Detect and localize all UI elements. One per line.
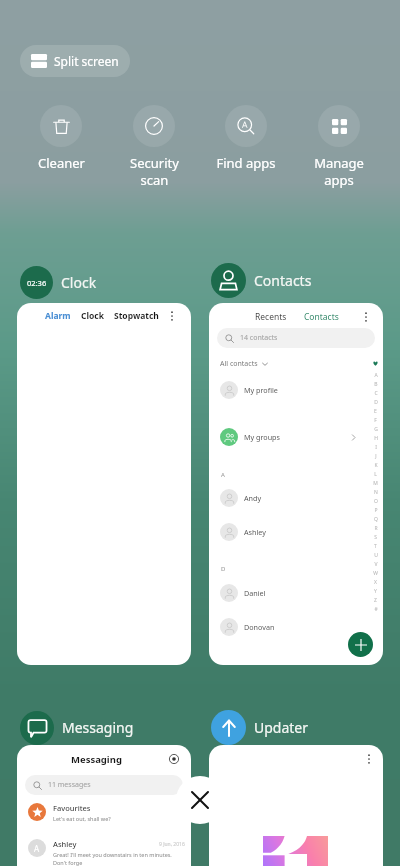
button[interactable]: Split screen — [20, 45, 130, 77]
staticText: L — [374, 471, 377, 478]
staticText: H — [374, 435, 378, 442]
staticText: A — [221, 471, 225, 479]
button[interactable]: Updater — [211, 710, 309, 745]
staticText: Messaging — [62, 718, 134, 737]
button[interactable]: Favourites — [17, 803, 191, 822]
staticText: All contacts — [220, 359, 258, 369]
staticText: Clock — [81, 310, 104, 322]
button[interactable]: Security scan — [108, 105, 200, 189]
staticText: My profile — [244, 385, 278, 395]
staticText: U — [374, 552, 378, 559]
staticText: # — [374, 606, 378, 613]
staticText: Donovan — [244, 622, 275, 632]
staticText: D — [221, 565, 226, 573]
button[interactable]: More options — [209, 745, 383, 866]
button[interactable]: My groups — [209, 426, 383, 448]
button[interactable]: More options — [164, 308, 180, 324]
staticText: 11 messages — [48, 780, 91, 790]
button[interactable]: Find apps — [200, 105, 292, 172]
staticText: Let's eat out, shall we? — [53, 815, 111, 822]
button[interactable]: Close all — [176, 776, 224, 824]
staticText: 14 contacts — [240, 333, 278, 343]
staticText: B — [374, 381, 378, 388]
button[interactable]: Messaging — [17, 745, 191, 866]
button[interactable]: Messaging — [20, 710, 134, 745]
button[interactable]: Andy — [209, 487, 383, 509]
button[interactable]: Contacts — [211, 263, 312, 298]
staticText: I — [375, 444, 377, 451]
staticText: F — [374, 417, 377, 424]
staticText: 02:36 — [27, 278, 47, 288]
staticText: T — [374, 543, 377, 550]
staticText: P — [374, 507, 378, 514]
staticText: E — [374, 408, 377, 415]
staticText: A — [374, 372, 378, 379]
button[interactable]: 14 contacts — [217, 328, 375, 348]
staticText: Cleaner — [38, 154, 85, 172]
staticText: Favourites — [53, 803, 91, 813]
staticText: Clock — [61, 273, 97, 292]
staticText: Alarm — [45, 310, 71, 322]
staticText: 9 Jun, 2016 — [159, 841, 185, 848]
staticText: K — [374, 462, 378, 469]
staticText: R — [374, 525, 378, 532]
button[interactable]: Alarm — [17, 303, 191, 665]
staticText: Q — [374, 516, 378, 523]
staticText: N — [374, 489, 378, 496]
staticText: O — [374, 498, 378, 505]
staticText: Contacts — [254, 271, 312, 290]
button[interactable]: Manage apps — [293, 105, 385, 189]
button[interactable]: New message — [167, 752, 181, 766]
staticText: Ashley — [244, 527, 266, 537]
staticText: J — [375, 453, 377, 460]
staticText: M — [373, 480, 378, 487]
staticText: Updater — [254, 718, 309, 737]
staticText: Manage apps — [314, 154, 364, 189]
button[interactable]: 02:36 — [20, 265, 97, 300]
button[interactable]: Daniel — [209, 582, 383, 604]
button[interactable]: Ashley — [209, 521, 383, 543]
staticText: My groups — [244, 432, 280, 442]
staticText: W — [373, 570, 378, 577]
staticText: S — [374, 534, 377, 541]
button[interactable]: More options — [361, 751, 377, 767]
button[interactable]: My profile — [209, 379, 383, 401]
staticText: Z — [374, 597, 377, 604]
button[interactable]: 11 messages — [25, 775, 183, 795]
staticText: Contacts — [304, 311, 339, 323]
button[interactable]: Recents — [209, 303, 383, 665]
staticText: C — [374, 390, 378, 397]
button[interactable]: A — [17, 839, 191, 866]
staticText: Daniel — [244, 588, 266, 598]
staticText: G — [374, 426, 378, 433]
button[interactable]: Donovan — [209, 616, 383, 638]
button[interactable]: Cleaner — [15, 105, 107, 172]
button[interactable]: More options — [358, 309, 374, 325]
staticText: Ashley — [53, 839, 77, 849]
staticText: D — [374, 399, 378, 406]
staticText: Security scan — [130, 154, 179, 189]
staticText: Recents — [255, 311, 287, 323]
staticText: V — [374, 561, 378, 568]
staticText: Y — [374, 588, 377, 595]
staticText: Split screen — [54, 53, 119, 69]
staticText: X — [374, 579, 377, 586]
button[interactable]: Add contact — [348, 632, 373, 657]
staticText: Find apps — [216, 154, 276, 172]
staticText: Messaging — [71, 753, 122, 766]
staticText: Great! I'll meet you downstairs in ten m… — [53, 851, 172, 866]
staticText: Andy — [244, 493, 262, 503]
staticText: Stopwatch — [114, 310, 159, 322]
staticText: A — [34, 843, 40, 854]
